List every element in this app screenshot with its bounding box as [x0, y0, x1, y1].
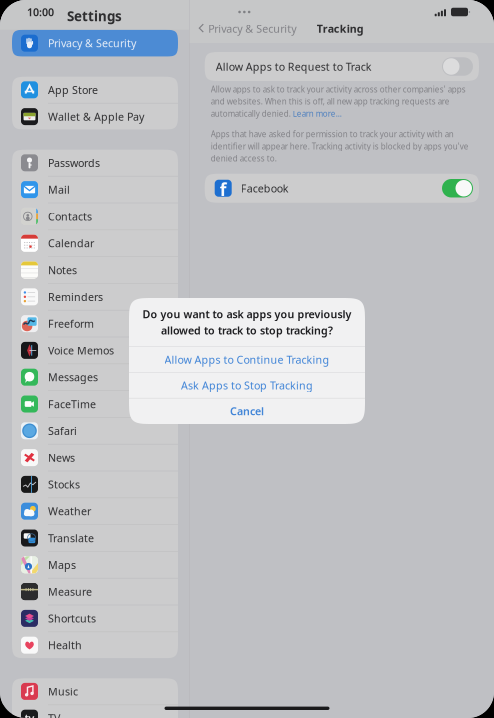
staticText: Apps that have asked for permission to t…: [211, 129, 454, 139]
staticText: and websites. When this is off, all new …: [211, 96, 450, 107]
staticText: denied access to.: [211, 153, 277, 164]
button[interactable]: Passwords: [12, 150, 178, 176]
staticText: Allow Apps to Continue Tracking: [164, 352, 329, 367]
button[interactable]: Cancel: [129, 398, 365, 424]
staticText: Music: [48, 684, 78, 698]
staticText: Health: [48, 638, 82, 652]
staticText: automatically denied.: [211, 108, 293, 119]
button[interactable]: Shortcuts: [12, 605, 178, 631]
staticText: News: [48, 450, 75, 465]
staticText: identifier will appear here. Tracking ac…: [211, 141, 469, 152]
button[interactable]: Privacy & Security: [190, 19, 296, 38]
button[interactable]: News: [12, 444, 178, 471]
staticText: Privacy & Security: [208, 21, 296, 36]
button[interactable]: f: [190, 174, 494, 203]
button[interactable]: Wallet & Apple Pay: [12, 103, 178, 130]
button[interactable]: Measure: [12, 578, 178, 605]
button[interactable]: Voice Memos: [12, 337, 178, 363]
staticText: Contacts: [48, 209, 92, 223]
staticText: Shortcuts: [48, 611, 96, 625]
staticText: Voice Memos: [48, 343, 114, 357]
staticText: Tracking: [317, 21, 364, 36]
staticText: Measure: [48, 584, 92, 599]
button[interactable]: Translate: [12, 525, 178, 551]
button[interactable]: Reminders: [12, 284, 178, 310]
staticText: App Store: [48, 83, 98, 97]
button[interactable]: Stocks: [12, 471, 178, 497]
button[interactable]: Contacts: [12, 203, 178, 229]
staticText: Cancel: [230, 404, 264, 418]
staticText: Messages: [48, 370, 98, 384]
staticText: Settings: [67, 7, 122, 25]
button[interactable]: Calendar: [12, 230, 178, 256]
staticText: FaceTime: [48, 397, 96, 411]
button[interactable]: Privacy & Security: [12, 30, 178, 57]
staticText: Translate: [48, 531, 94, 545]
staticText: Passwords: [48, 156, 100, 170]
staticText: Maps: [48, 558, 76, 572]
button[interactable]: Mail: [12, 176, 178, 203]
staticText: Freeform: [48, 316, 94, 331]
staticText: Notes: [48, 263, 77, 277]
staticText: Stocks: [48, 477, 80, 491]
button[interactable]: FaceTime: [12, 391, 178, 417]
button[interactable]: tv: [12, 705, 178, 718]
button[interactable]: Weather: [12, 498, 178, 524]
staticText: Reminders: [48, 290, 103, 304]
staticText: allowed to track to stop tracking?: [161, 323, 333, 337]
staticText: Learn more...: [293, 108, 342, 119]
staticText: Do you want to ask apps you previously: [142, 307, 351, 321]
staticText: Allow Apps to Request to Track: [216, 59, 372, 74]
button[interactable]: Allow Apps to Continue Tracking: [129, 347, 365, 372]
staticText: Privacy & Security: [48, 36, 136, 50]
button[interactable]: Messages: [12, 364, 178, 390]
staticText: tv: [24, 711, 34, 718]
staticText: Ask Apps to Stop Tracking: [181, 378, 313, 392]
staticText: Mail: [48, 182, 70, 197]
button[interactable]: Safari: [12, 418, 178, 444]
staticText: Allow apps to ask to track your activity…: [211, 84, 466, 95]
button[interactable]: Learn more...: [293, 108, 342, 119]
button[interactable]: Maps: [12, 552, 178, 578]
staticText: f: [220, 178, 227, 201]
staticText: Safari: [48, 424, 77, 438]
staticText: Facebook: [241, 181, 289, 195]
staticText: Wallet & Apple Pay: [48, 109, 144, 124]
button[interactable]: Notes: [12, 257, 178, 283]
staticText: TV: [48, 711, 60, 718]
button[interactable]: Allow Apps to Request to Track: [190, 52, 494, 81]
button[interactable]: Music: [12, 678, 178, 704]
staticText: Weather: [48, 504, 91, 518]
button[interactable]: App Store: [12, 77, 178, 103]
staticText: Calendar: [48, 236, 94, 250]
button[interactable]: Health: [12, 632, 178, 658]
button[interactable]: Freeform: [12, 310, 178, 337]
staticText: 10:00: [27, 5, 54, 19]
button[interactable]: Ask Apps to Stop Tracking: [129, 373, 365, 398]
